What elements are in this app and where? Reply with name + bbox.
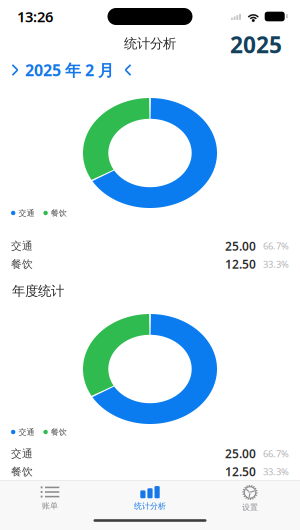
staticText: 66.7%: [263, 240, 289, 252]
staticText: 餐饮: [51, 427, 67, 437]
staticText: 12.50: [225, 256, 256, 272]
staticText: 2025 年 2 月: [25, 59, 114, 81]
button[interactable]: 统计分析: [100, 482, 200, 516]
staticText: 25.00: [225, 238, 256, 254]
staticText: 13:26: [17, 7, 53, 26]
staticText: 交通: [11, 239, 33, 252]
staticText: 12.50: [225, 464, 256, 480]
staticText: 2025: [230, 29, 282, 59]
button[interactable]: 上个月: [6, 60, 24, 80]
staticText: 25.00: [225, 446, 256, 461]
button[interactable]: 下个月: [119, 60, 137, 80]
staticText: 66.7%: [263, 447, 289, 460]
staticText: 餐饮: [11, 257, 33, 271]
staticText: 交通: [18, 427, 34, 437]
staticText: 统计分析: [134, 501, 166, 511]
staticText: 账单: [42, 501, 58, 511]
staticText: 33.3%: [263, 258, 289, 270]
button[interactable]: 设置: [200, 482, 300, 516]
staticText: 年度统计: [12, 283, 64, 299]
staticText: 餐饮: [51, 208, 67, 218]
staticText: 餐饮: [11, 465, 33, 478]
button[interactable]: 账单: [0, 482, 100, 516]
staticText: 设置: [242, 502, 258, 512]
button[interactable]: 2025: [228, 33, 284, 55]
staticText: 交通: [18, 208, 34, 218]
staticText: 交通: [11, 447, 33, 460]
staticText: 33.3%: [263, 465, 289, 478]
staticText: 统计分析: [124, 35, 176, 52]
